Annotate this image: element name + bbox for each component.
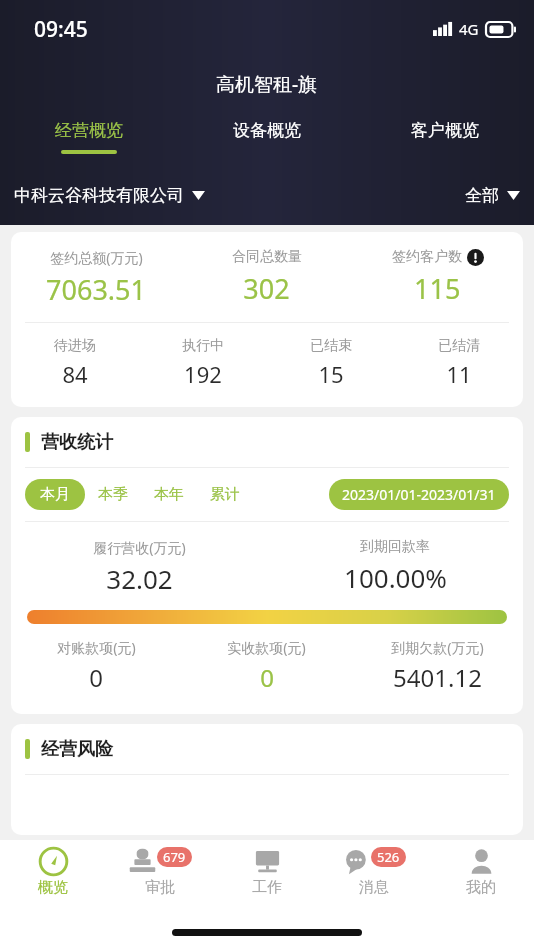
staticText: 中科云谷科技有限公司 [14,185,184,206]
staticText: 消息 [359,878,389,897]
button[interactable]: 本年 [141,479,197,510]
staticText: 已结清 [438,337,480,355]
staticText: 32.02 [106,561,173,596]
button[interactable]: 中科云谷科技有限公司 [14,185,205,206]
staticText: 全部 [465,185,499,206]
staticText: 4G [459,19,479,39]
staticText: 已结束 [310,337,352,355]
staticText: 累计 [210,485,240,504]
button[interactable]: 概览 [0,840,106,914]
staticText: 我的 [466,878,496,897]
staticText: 执行中 [182,337,224,355]
staticText: 2023/01/01-2023/01/31 [342,485,496,504]
staticText: 本季 [98,485,128,504]
staticText: 本年 [154,485,184,504]
staticText: 09:45 [34,15,88,44]
button[interactable]: 经营概览 [0,120,178,172]
staticText: 302 [243,270,290,307]
staticText: 526 [377,848,400,866]
staticText: 192 [184,359,222,389]
staticText: 履行营收(万元) [93,538,186,557]
staticText: 7063.51 [46,271,146,308]
staticText: 审批 [145,878,175,897]
staticText: 合同总数量 [232,248,302,266]
staticText: 0 [260,661,274,694]
staticText: 高机智租-旗 [216,71,318,97]
button[interactable]: 全部 [465,185,520,206]
staticText: 客户概览 [411,120,479,141]
staticText: 0 [89,661,103,694]
staticText: 营收统计 [41,431,113,454]
staticText: 签约总额(万元) [50,248,143,267]
button[interactable]: 本月 [25,479,85,510]
button[interactable]: 设备概览 [178,120,356,172]
button[interactable]: 679 [106,840,213,914]
staticText: 经营概览 [55,120,123,141]
button[interactable]: Info [467,249,484,266]
staticText: 签约客户数 [392,248,462,266]
button[interactable]: 2023/01/01-2023/01/31 [329,479,509,510]
staticText: 对账款项(元) [57,638,136,657]
button[interactable]: 本季 [85,479,141,510]
button[interactable]: 工作 [213,840,320,914]
staticText: 工作 [252,878,282,897]
staticText: 100.00% [344,560,447,595]
staticText: 84 [62,359,88,389]
button[interactable]: 累计 [197,479,253,510]
staticText: 到期欠款(万元) [391,638,484,657]
staticText: 经营风险 [41,738,113,761]
staticText: 概览 [38,878,68,897]
staticText: 设备概览 [233,120,301,141]
button[interactable]: 526 [320,840,427,914]
button[interactable]: 我的 [427,840,534,914]
staticText: 115 [414,270,461,307]
staticText: 15 [318,359,344,389]
staticText: 本月 [40,485,70,504]
staticText: 11 [446,359,472,389]
staticText: 实收款项(元) [227,638,306,657]
staticText: 待进场 [54,337,96,355]
button[interactable]: 客户概览 [356,120,534,172]
staticText: 到期回款率 [360,538,430,556]
staticText: 679 [163,848,186,866]
staticText: 5401.12 [393,661,482,694]
